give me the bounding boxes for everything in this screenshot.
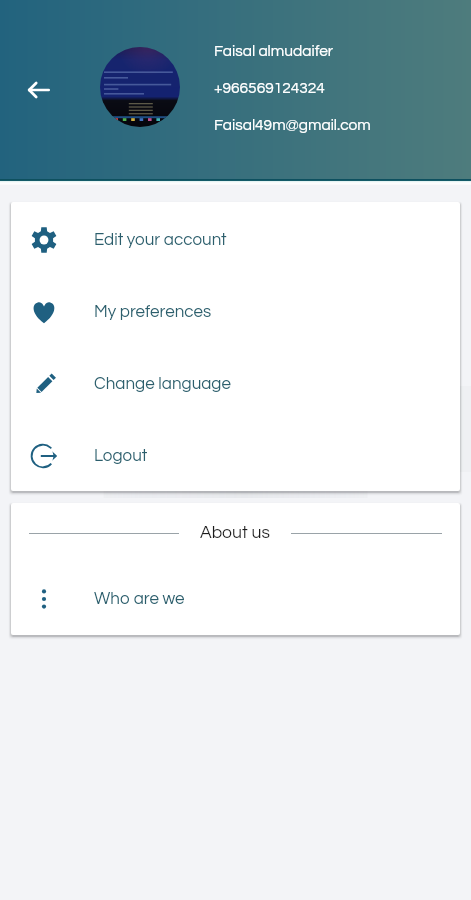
staticText: My preferences: [94, 303, 212, 321]
staticText: Logout: [94, 447, 148, 465]
button[interactable]: Edit your account: [11, 204, 460, 276]
staticText: Change language: [94, 375, 231, 393]
button[interactable]: Who are we: [11, 563, 460, 635]
staticText: Edit your account: [94, 231, 227, 249]
staticText: Faisal almudaifer: [214, 43, 334, 59]
staticText: About us: [200, 524, 270, 542]
staticText: +966569124324: [214, 80, 325, 96]
button[interactable]: Back: [25, 76, 53, 104]
button[interactable]: Logout: [11, 420, 460, 491]
staticText: Who are we: [94, 590, 185, 608]
button[interactable]: Change language: [11, 348, 460, 420]
staticText: Faisal49m@gmail.com: [214, 117, 371, 133]
button[interactable]: My preferences: [11, 276, 460, 348]
